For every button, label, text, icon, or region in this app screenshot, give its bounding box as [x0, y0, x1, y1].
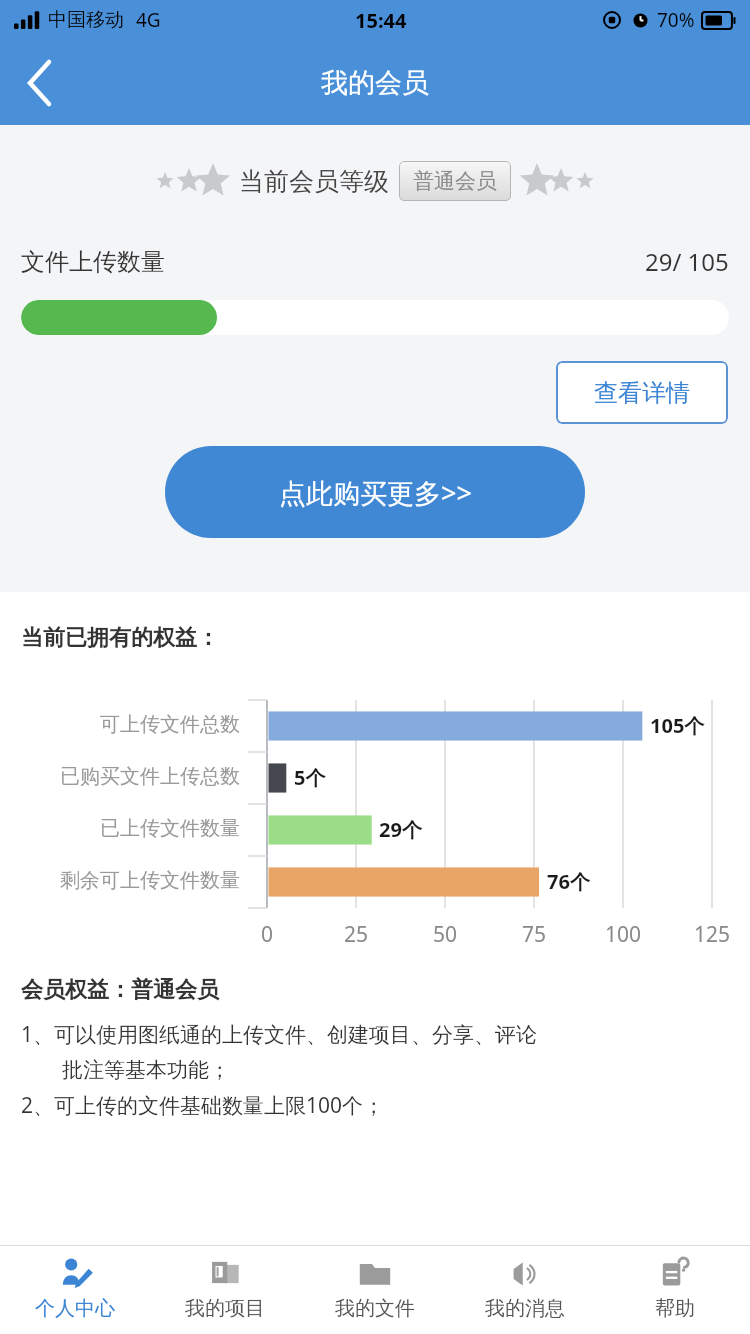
staticText: 我的文件 [335, 1296, 415, 1321]
staticText: 0 [242, 920, 292, 949]
button[interactable]: 普通会员 [399, 161, 511, 201]
staticText: 可上传文件总数 [0, 712, 240, 737]
staticText: 75 [509, 920, 559, 949]
staticText: 70% [657, 7, 695, 33]
staticText: 29/ 105 [645, 245, 729, 278]
button[interactable]: 我的文件 [300, 1246, 450, 1334]
staticText: 1、可以使用图纸通的上传文件、创建项目、分享、评论 [21, 1020, 538, 1049]
staticText: 会员权益：普通会员 [21, 976, 219, 1004]
staticText: 29个 [379, 816, 422, 843]
staticText: 4G [136, 7, 161, 33]
staticText: 批注等基本功能； [62, 1057, 230, 1083]
staticText: 105个 [650, 712, 705, 739]
staticText: 当前已拥有的权益： [21, 624, 219, 652]
staticText: 个人中心 [35, 1296, 115, 1321]
staticText: 25 [331, 920, 381, 949]
staticText: 125 [687, 920, 737, 949]
staticText: 文件上传数量 [21, 247, 165, 277]
staticText: 我的会员 [321, 66, 429, 100]
staticText: 帮助 [655, 1296, 695, 1321]
staticText: 50 [420, 920, 470, 949]
button[interactable]: Back [8, 51, 72, 115]
button[interactable]: 点此购买更多>> [165, 446, 585, 538]
staticText: 15:44 [355, 7, 407, 34]
staticText: 76个 [547, 868, 590, 895]
button[interactable]: 查看详情 [556, 361, 728, 424]
button[interactable]: 个人中心 [0, 1246, 150, 1334]
staticText: 2、可上传的文件基础数量上限100个； [21, 1091, 385, 1120]
staticText: 普通会员 [413, 168, 497, 194]
staticText: 点此购买更多>> [279, 474, 472, 511]
staticText: 我的项目 [185, 1296, 265, 1321]
staticText: 当前会员等级 [239, 166, 389, 197]
staticText: 100 [598, 920, 648, 949]
staticText: 已上传文件数量 [0, 816, 240, 841]
staticText: 查看详情 [594, 378, 690, 408]
staticText: 我的消息 [485, 1296, 565, 1321]
staticText: 已购买文件上传总数 [0, 764, 240, 789]
staticText: 中国移动 [48, 8, 124, 32]
button[interactable]: 我的消息 [450, 1246, 600, 1334]
staticText: 5个 [294, 764, 326, 791]
button[interactable]: 帮助 [600, 1246, 750, 1334]
button[interactable]: 我的项目 [150, 1246, 300, 1334]
staticText: 剩余可上传文件数量 [0, 868, 240, 893]
